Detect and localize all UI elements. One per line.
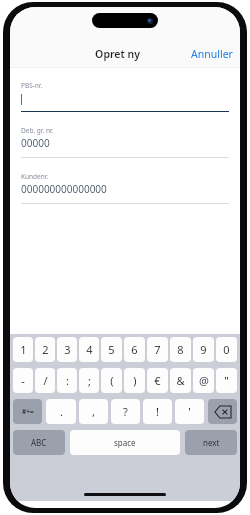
staticText: ! [156,404,159,419]
staticText: next [203,437,220,448]
staticText: 5 [108,342,115,357]
staticText: #+= [22,407,34,416]
staticText: ( [110,373,114,388]
staticText: ; [88,373,91,388]
button[interactable]: #+= [13,399,42,424]
staticText: 2 [42,342,49,357]
staticText: 6 [131,342,138,357]
button[interactable]: Annuller [189,45,235,63]
staticText: Opret ny [95,47,140,61]
button[interactable]: / [35,368,55,393]
staticText: / [43,373,48,388]
staticText: : [66,373,69,388]
button[interactable]: ) [124,368,145,393]
staticText: Kundenr. [21,172,49,181]
button[interactable]: - [13,368,33,393]
button[interactable]: ( [101,368,122,393]
staticText: . [60,404,63,419]
button[interactable]: ; [79,368,99,393]
button[interactable]: & [170,368,191,393]
staticText: 9 [200,342,207,357]
staticText: @ [199,373,209,388]
staticText: 3 [64,342,71,357]
staticText: ABC [31,437,47,448]
button[interactable]: ' [175,399,204,424]
button[interactable]: . [46,399,76,424]
button[interactable]: 4 [79,337,99,362]
button[interactable]: ? [111,399,140,424]
button[interactable]: : [57,368,77,393]
staticText: 00000 [21,136,50,150]
button[interactable]: 9 [193,337,214,362]
staticText: 8 [177,342,184,357]
staticText: Deb. gr. nr. [21,126,54,135]
button[interactable]: 1 [13,337,33,362]
staticText: ' [188,404,191,419]
staticText: € [154,373,161,388]
button[interactable]: € [147,368,168,393]
staticText: PBS-nr. [21,81,43,90]
staticText: ) [133,373,137,388]
staticText: " [224,373,229,388]
button[interactable]: next [185,430,237,455]
staticText: & [176,373,185,388]
staticText: 0 [223,342,230,357]
staticText: ? [123,404,128,419]
button[interactable]: @ [193,368,214,393]
staticText: 1 [20,342,27,357]
button[interactable]: ABC [13,430,65,455]
staticText: , [92,404,95,419]
staticText: 000000000000000 [21,182,107,196]
button[interactable]: " [216,368,237,393]
staticText: 7 [154,342,161,357]
staticText: Annuller [191,47,233,61]
button[interactable]: 0 [216,337,237,362]
button[interactable]: Backspace [208,399,237,424]
staticText: - [21,373,25,388]
staticText: 4 [86,342,93,357]
button[interactable]: ! [143,399,172,424]
button[interactable]: space [70,430,180,455]
button[interactable]: Opret ny [93,45,142,63]
button[interactable]: 6 [124,337,145,362]
button[interactable]: 2 [35,337,55,362]
button[interactable]: 5 [101,337,122,362]
staticText: space [114,437,136,448]
button[interactable]: 3 [57,337,77,362]
button[interactable]: 8 [170,337,191,362]
button[interactable]: , [79,399,108,424]
button[interactable]: 7 [147,337,168,362]
